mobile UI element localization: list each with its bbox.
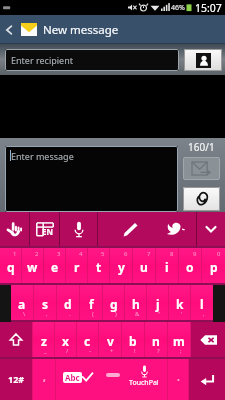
staticText: m (173, 333, 185, 349)
staticText: & (135, 310, 140, 318)
staticText: ! (134, 347, 136, 355)
staticText: y (118, 259, 125, 275)
staticText: . (69, 310, 71, 318)
button[interactable]: 2 (22, 248, 43, 283)
staticText: i (165, 259, 169, 275)
staticText: h (132, 296, 140, 312)
button[interactable]: s (34, 285, 56, 320)
button[interactable]: Input mode Abc (56, 359, 100, 400)
staticText: - (89, 347, 91, 355)
button[interactable]: 5 (88, 248, 109, 283)
staticText: f (89, 296, 94, 312)
button[interactable]: c (77, 322, 98, 357)
button[interactable]: z (33, 322, 54, 357)
button[interactable]: Handwriting (0, 212, 29, 246)
staticText: ? (157, 347, 160, 355)
staticText: t (96, 259, 102, 275)
button[interactable]: Space (100, 359, 167, 400)
staticText: ' (181, 310, 183, 318)
staticText: p (210, 259, 218, 275)
staticText: 2 (35, 250, 39, 258)
button[interactable]: m (168, 322, 190, 357)
staticText: c (84, 333, 91, 349)
button[interactable]: h (125, 285, 146, 320)
staticText: 5 (101, 250, 105, 258)
button[interactable]: Add recipient from contacts (184, 49, 222, 71)
button[interactable]: Enter recipient (5, 49, 179, 71)
button[interactable]: Shift (0, 322, 32, 357)
button[interactable]: 1 (0, 248, 21, 283)
staticText: u (140, 259, 148, 275)
button[interactable]: Enter (189, 359, 225, 400)
staticText: ) (115, 310, 117, 318)
button[interactable]: 7 (133, 248, 155, 283)
staticText: . (177, 370, 180, 384)
staticText: e (51, 259, 59, 275)
button[interactable]: n (145, 322, 167, 357)
staticText: b (129, 333, 137, 349)
button[interactable]: b (122, 322, 144, 357)
staticText: 1 (13, 250, 17, 258)
staticText: 6 (124, 250, 128, 258)
staticText: , (203, 310, 205, 318)
staticText: , (43, 370, 46, 384)
staticText: 9 (193, 250, 197, 258)
staticText: EN (42, 226, 53, 237)
button[interactable]: Attach file (183, 187, 220, 211)
staticText: k (176, 296, 184, 312)
button[interactable]: Twitter (162, 212, 196, 246)
staticText: g (110, 296, 118, 312)
button[interactable]: , (33, 359, 55, 400)
button[interactable]: a (11, 285, 33, 320)
staticText: Enter message (11, 150, 74, 162)
button[interactable]: 0 (202, 248, 225, 283)
button[interactable]: Send message (183, 157, 220, 180)
button[interactable]: Hide keyboard (197, 212, 225, 246)
button[interactable]: Backspace (191, 322, 225, 357)
button[interactable]: 6 (110, 248, 132, 283)
staticText: " (158, 310, 161, 318)
staticText: j (156, 296, 160, 312)
button[interactable]: j (147, 285, 168, 320)
button[interactable]: Input language (30, 212, 59, 246)
button[interactable]: d (57, 285, 79, 320)
staticText: 0 (217, 250, 221, 258)
button[interactable]: k (169, 285, 190, 320)
staticText: New message (43, 22, 119, 38)
staticText: ; (180, 347, 182, 355)
button[interactable]: v (99, 322, 121, 357)
button[interactable]: 3 (44, 248, 65, 283)
button[interactable]: Symbols (0, 359, 32, 400)
button[interactable]: Draw (98, 212, 162, 246)
staticText: 46% (171, 3, 185, 13)
staticText: 15:07 (195, 1, 222, 15)
staticText: ( (92, 310, 94, 318)
button[interactable]: . (168, 359, 188, 400)
staticText: a (18, 296, 26, 312)
button[interactable]: Voice input (60, 212, 97, 246)
staticText: q (7, 259, 15, 275)
button[interactable]: x (55, 322, 76, 357)
staticText: / (66, 347, 69, 355)
button[interactable]: 4 (66, 248, 87, 283)
staticText: 7 (147, 250, 151, 258)
staticText: 8 (170, 250, 174, 258)
button[interactable]: 8 (156, 248, 178, 283)
button[interactable]: Enter message (5, 146, 178, 212)
staticText: _ (44, 347, 47, 355)
button[interactable]: g (103, 285, 124, 320)
button[interactable]: Back (0, 15, 18, 44)
button[interactable]: l (191, 285, 213, 320)
staticText: l (200, 296, 204, 312)
staticText: n (152, 333, 160, 349)
button[interactable]: f (80, 285, 102, 320)
staticText: r (74, 259, 80, 275)
staticText: o (186, 259, 194, 275)
staticText: s (42, 296, 49, 312)
staticText: \ (23, 310, 26, 318)
button[interactable]: 9 (179, 248, 201, 283)
staticText: TouchPal (129, 378, 159, 388)
staticText: z (41, 333, 47, 349)
staticText: 3 (57, 250, 61, 258)
staticText: 160/1 (188, 140, 215, 154)
